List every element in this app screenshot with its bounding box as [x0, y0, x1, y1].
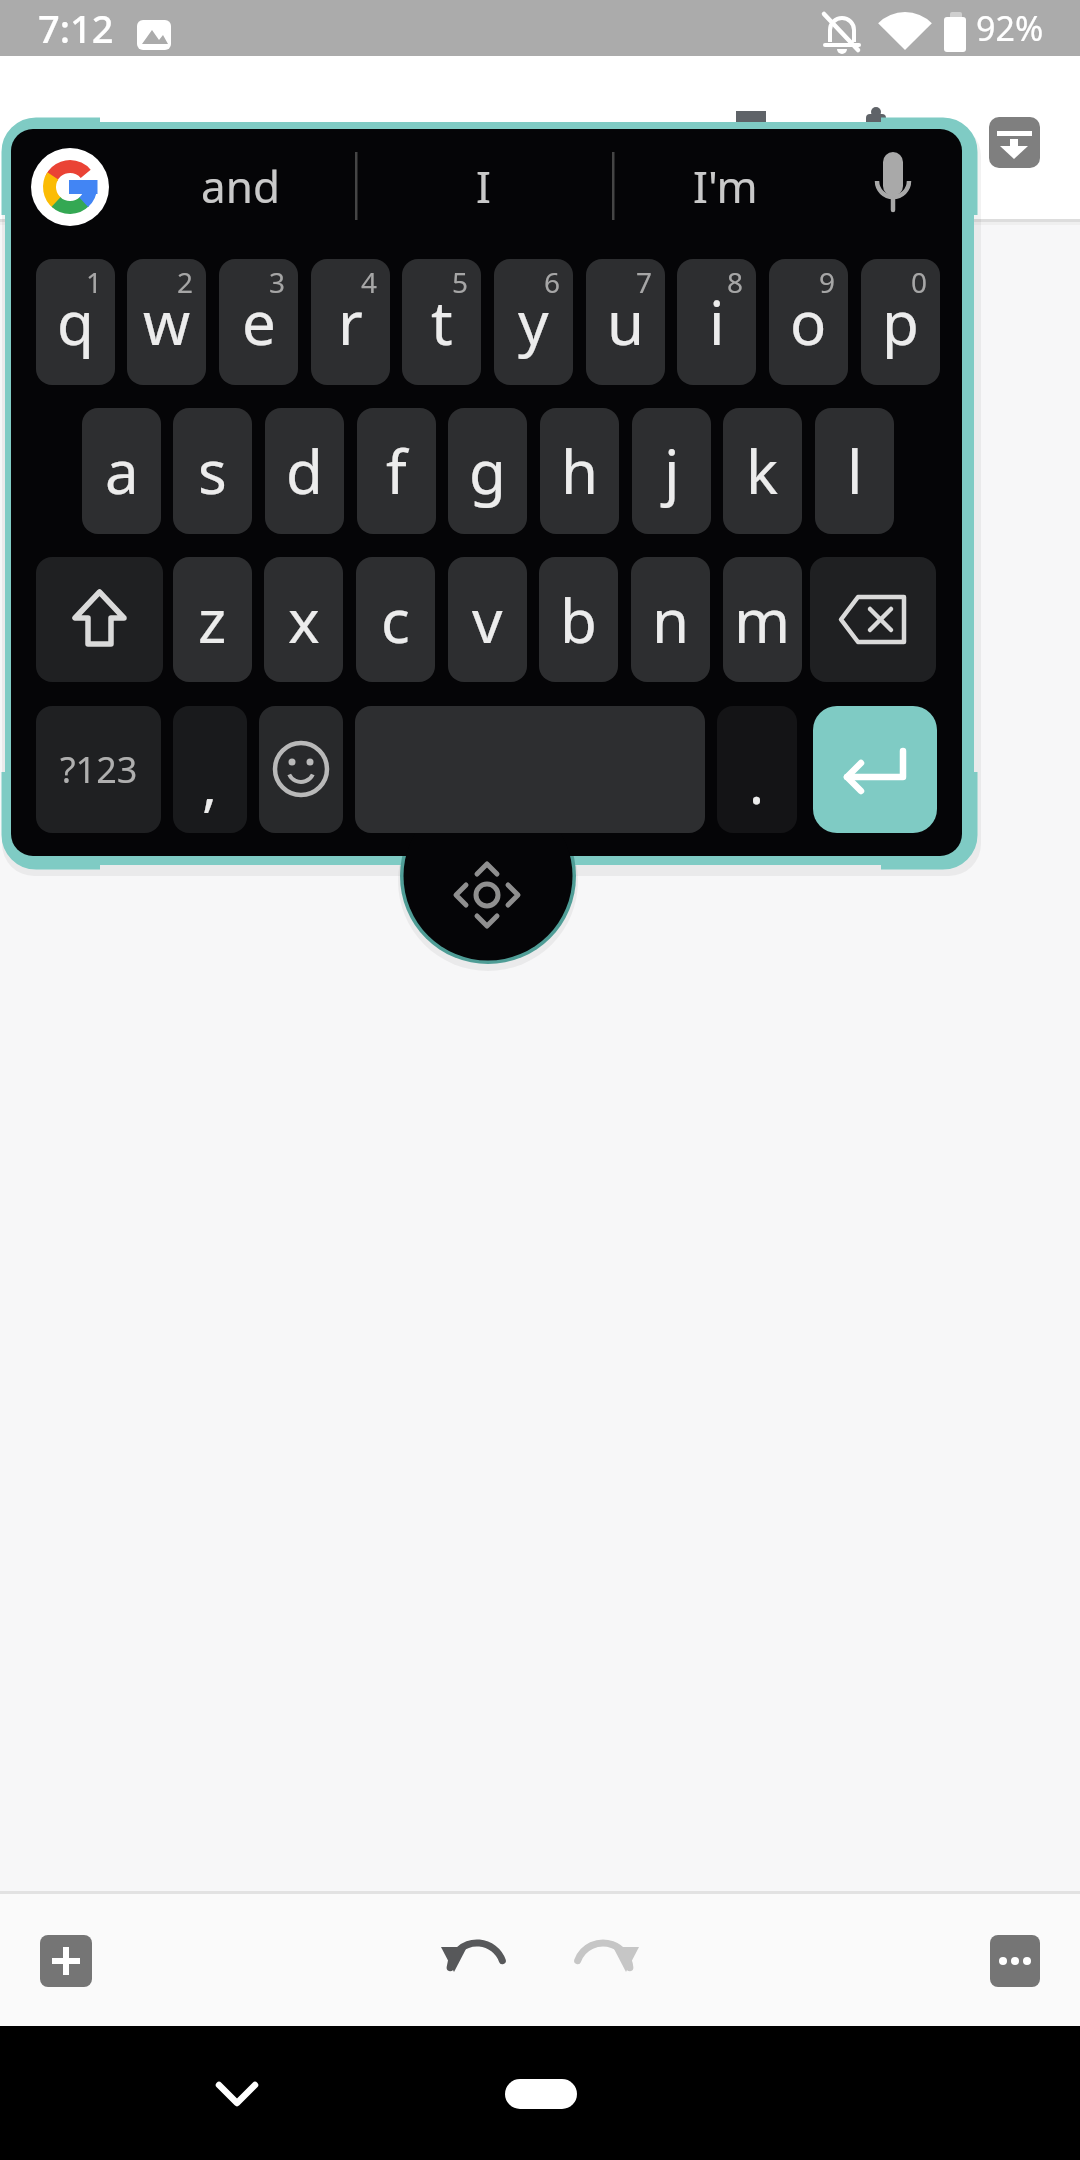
- staticText: and: [201, 156, 280, 216]
- button[interactable]: [445, 1936, 505, 1996]
- staticText: 7: [636, 263, 653, 301]
- staticText: k: [746, 430, 779, 512]
- button[interactable]: n: [631, 557, 710, 682]
- staticText: i: [709, 281, 725, 363]
- button[interactable]: b: [539, 557, 618, 682]
- button[interactable]: h: [540, 408, 619, 534]
- staticText: j: [664, 430, 680, 512]
- button[interactable]: [985, 113, 1045, 173]
- button[interactable]: I: [403, 152, 563, 220]
- button[interactable]: x: [264, 557, 343, 682]
- staticText: 2: [177, 263, 194, 301]
- button[interactable]: [986, 1931, 1046, 1991]
- staticText: e: [242, 281, 276, 363]
- button[interactable]: u: [586, 259, 665, 385]
- button[interactable]: d: [265, 408, 344, 534]
- button[interactable]: y: [494, 259, 573, 385]
- button[interactable]: [36, 1931, 96, 1991]
- staticText: w: [143, 281, 191, 363]
- staticText: h: [561, 430, 599, 512]
- staticText: l: [847, 430, 863, 512]
- button[interactable]: j: [632, 408, 711, 534]
- button[interactable]: e: [219, 259, 298, 385]
- staticText: 92%: [976, 5, 1044, 51]
- button[interactable]: q: [36, 259, 115, 385]
- staticText: m: [734, 579, 791, 661]
- staticText: a: [105, 430, 139, 512]
- button[interactable]: [207, 2064, 267, 2124]
- staticText: 0: [911, 263, 928, 301]
- button[interactable]: p: [861, 259, 940, 385]
- staticText: u: [607, 281, 645, 363]
- button[interactable]: k: [723, 408, 802, 534]
- button[interactable]: w: [127, 259, 206, 385]
- staticText: y: [518, 281, 549, 363]
- button[interactable]: g: [448, 408, 527, 534]
- staticText: x: [288, 579, 320, 661]
- staticText: I: [476, 156, 491, 216]
- button[interactable]: a: [82, 408, 161, 534]
- staticText: d: [286, 430, 323, 512]
- staticText: p: [882, 281, 919, 363]
- staticText: 7:12: [38, 2, 114, 54]
- button[interactable]: [36, 557, 163, 682]
- staticText: z: [198, 579, 227, 661]
- staticText: ?123: [60, 745, 138, 794]
- button[interactable]: I'm: [645, 152, 805, 220]
- staticText: t: [431, 281, 453, 363]
- button[interactable]: f: [357, 408, 436, 534]
- staticText: r: [338, 281, 363, 363]
- button[interactable]: v: [448, 557, 527, 682]
- button[interactable]: [813, 706, 937, 833]
- staticText: c: [381, 579, 410, 661]
- staticText: s: [198, 430, 227, 512]
- staticText: ,: [202, 746, 218, 822]
- staticText: .: [749, 744, 765, 820]
- staticText: 4: [361, 263, 378, 301]
- button[interactable]: c: [356, 557, 435, 682]
- staticText: 3: [269, 263, 286, 301]
- staticText: I'm: [693, 156, 758, 216]
- button[interactable]: m: [723, 557, 802, 682]
- button[interactable]: .: [717, 706, 797, 833]
- staticText: g: [469, 430, 506, 512]
- button[interactable]: [495, 2069, 587, 2119]
- button[interactable]: z: [173, 557, 252, 682]
- staticText: o: [790, 281, 827, 363]
- staticText: b: [560, 579, 597, 661]
- button[interactable]: r: [311, 259, 390, 385]
- staticText: f: [386, 430, 407, 512]
- button[interactable]: t: [402, 259, 481, 385]
- button[interactable]: ,: [173, 706, 247, 833]
- staticText: 5: [452, 263, 469, 301]
- staticText: v: [472, 579, 503, 661]
- staticText: 6: [544, 263, 561, 301]
- button[interactable]: i: [677, 259, 756, 385]
- button[interactable]: [575, 1936, 635, 1996]
- staticText: 1: [86, 263, 103, 301]
- staticText: n: [652, 579, 690, 661]
- staticText: 9: [819, 263, 836, 301]
- button[interactable]: o: [769, 259, 848, 385]
- button[interactable]: l: [815, 408, 894, 534]
- button[interactable]: ?123: [36, 706, 161, 833]
- staticText: 8: [727, 263, 744, 301]
- staticText: q: [57, 281, 94, 363]
- button[interactable]: [259, 706, 343, 833]
- button[interactable]: s: [173, 408, 252, 534]
- button[interactable]: and: [160, 152, 320, 220]
- button[interactable]: [810, 557, 936, 682]
